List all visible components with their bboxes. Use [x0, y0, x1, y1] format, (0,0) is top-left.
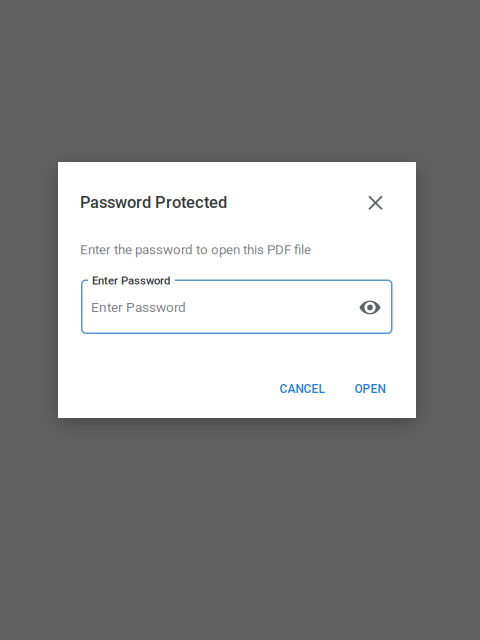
- staticText: OPEN: [354, 382, 385, 396]
- button[interactable]: Show password: [355, 292, 385, 322]
- button[interactable]: Enter Password: [81, 279, 392, 334]
- button[interactable]: CANCEL: [272, 376, 332, 402]
- staticText: CANCEL: [279, 382, 324, 396]
- staticText: Enter the password to open this PDF file: [80, 242, 311, 258]
- staticText: Password Protected: [80, 193, 227, 212]
- staticText: Enter Password: [91, 299, 186, 315]
- staticText: Enter Password: [92, 274, 170, 287]
- button[interactable]: Close: [358, 186, 392, 220]
- button[interactable]: OPEN: [347, 376, 393, 402]
